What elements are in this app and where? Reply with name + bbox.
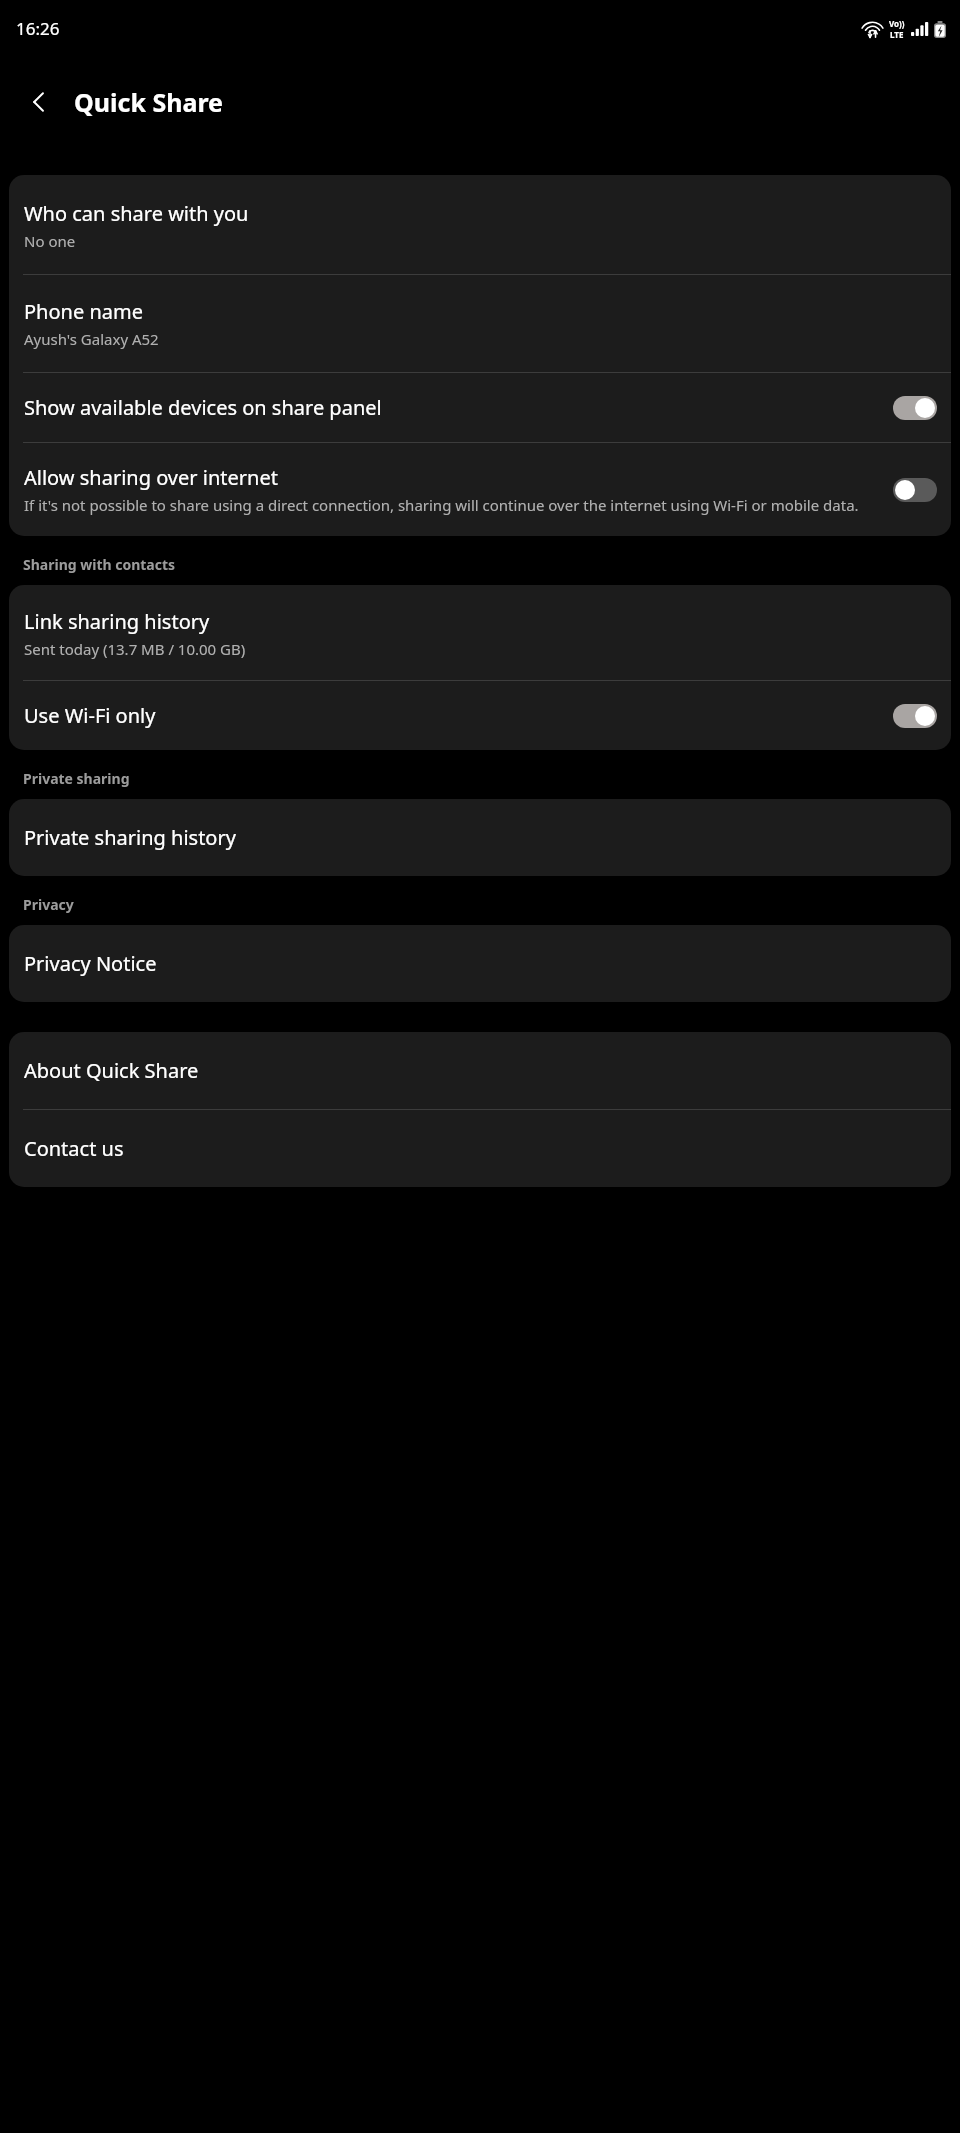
- staticText: Quick Share: [74, 85, 224, 119]
- staticText: Privacy Notice: [24, 950, 157, 977]
- staticText: Use Wi-Fi only: [24, 702, 156, 729]
- button[interactable]: Privacy Notice: [9, 925, 951, 1002]
- staticText: Allow sharing over internet: [24, 464, 278, 491]
- staticText: LTE: [890, 29, 904, 40]
- button[interactable]: Link sharing history: [9, 585, 951, 680]
- button[interactable]: About Quick Share: [9, 1032, 951, 1109]
- button[interactable]: On: [893, 704, 937, 728]
- button[interactable]: Who can share with you: [9, 175, 951, 274]
- button[interactable]: Contact us: [9, 1110, 951, 1187]
- staticText: 16:26: [16, 17, 60, 40]
- staticText: Sharing with contacts: [23, 555, 176, 574]
- staticText: Vo)): [889, 18, 905, 29]
- staticText: Link sharing history: [24, 608, 210, 635]
- staticText: Phone name: [24, 298, 143, 325]
- staticText: About Quick Share: [24, 1057, 199, 1084]
- button[interactable]: Phone name: [9, 275, 951, 372]
- button[interactable]: Allow sharing over internet: [9, 443, 951, 536]
- button[interactable]: Private sharing history: [9, 799, 951, 876]
- button[interactable]: Back: [13, 76, 65, 128]
- staticText: No one: [24, 231, 76, 251]
- staticText: Private sharing: [23, 769, 130, 788]
- staticText: Show available devices on share panel: [24, 394, 382, 421]
- button[interactable]: On: [893, 396, 937, 420]
- staticText: Sent today (13.7 MB / 10.00 GB): [24, 639, 246, 659]
- button[interactable]: Off: [893, 478, 937, 502]
- staticText: Private sharing history: [24, 824, 236, 851]
- staticText: If it's not possible to share using a di…: [24, 495, 859, 515]
- staticText: Contact us: [24, 1135, 124, 1162]
- staticText: Who can share with you: [24, 200, 249, 227]
- staticText: Ayush's Galaxy A52: [24, 329, 159, 349]
- button[interactable]: Show available devices on share panel: [9, 373, 951, 442]
- button[interactable]: Use Wi-Fi only: [9, 681, 951, 750]
- staticText: Privacy: [23, 895, 74, 914]
